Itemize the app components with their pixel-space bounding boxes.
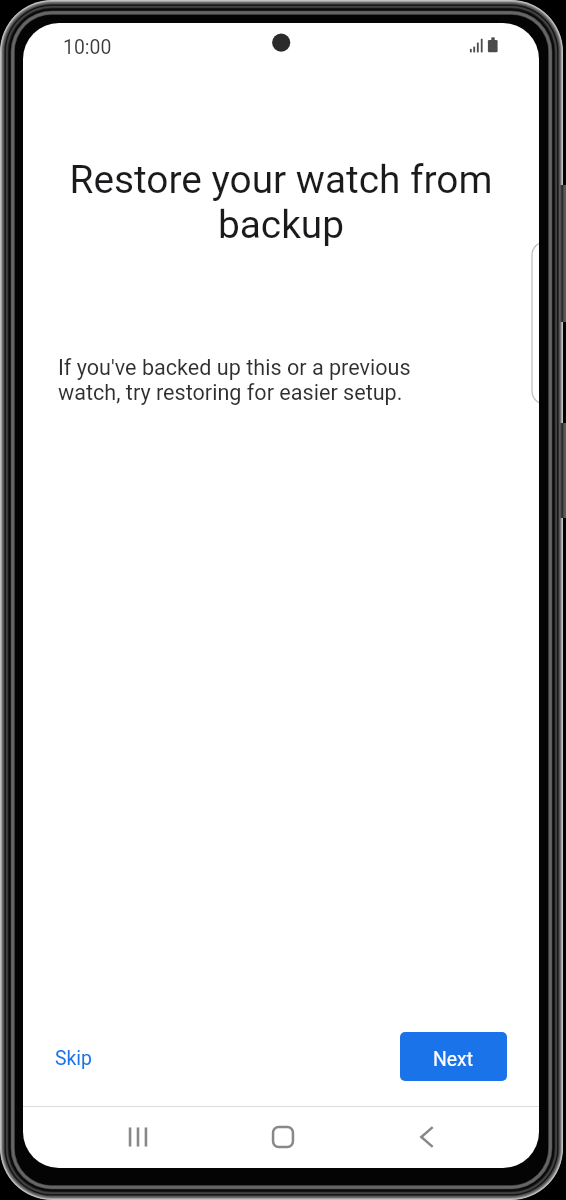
- staticText: Restore your watch from backup: [23, 157, 539, 247]
- button[interactable]: Home: [255, 1109, 311, 1165]
- staticText: Skip: [55, 1047, 110, 1070]
- staticText: 10:00: [63, 36, 112, 59]
- staticText: If you've backed up this or a previous w…: [58, 355, 418, 406]
- staticText: Next: [433, 1048, 474, 1071]
- button[interactable]: Next: [400, 1032, 507, 1081]
- button[interactable]: Back: [399, 1109, 455, 1165]
- button[interactable]: Skip: [40, 1034, 110, 1082]
- button[interactable]: Recent apps: [110, 1109, 166, 1165]
